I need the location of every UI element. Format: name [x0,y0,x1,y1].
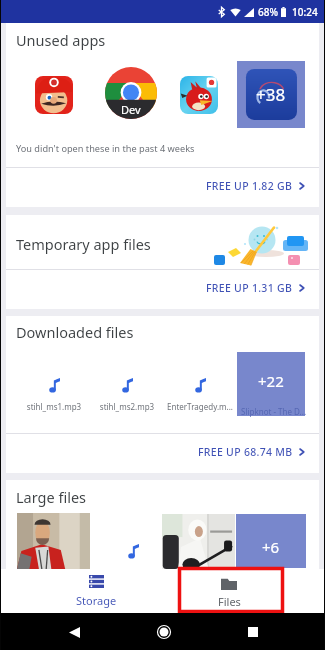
button[interactable]: Storage [46,569,146,613]
staticText: 68% [258,5,278,19]
button[interactable]: Back [62,620,86,644]
button[interactable]: Recents [241,620,265,644]
staticText: EnterTragedy.m... [164,401,236,412]
button[interactable]: FREE UP 68.74 MB [6,434,319,473]
staticText: 10:24 [292,5,318,19]
staticText: Slipknot - The D... [241,406,307,417]
staticText: Dev [121,102,141,117]
staticText: Large files [16,487,87,507]
staticText: +22 [258,371,284,391]
button[interactable]: FREE UP 1.82 GB [6,168,319,207]
staticText: FREE UP 1.31 GB [206,281,293,295]
staticText: Downloaded files [16,322,134,342]
button[interactable]: Home [152,620,176,644]
staticText: stihl_ms1.mp3 [18,401,90,412]
button[interactable]: FREE UP 1.31 GB [6,270,319,309]
button[interactable]: Files [179,569,279,613]
staticText: FREE UP 1.82 GB [206,179,293,193]
staticText: +38 [256,83,286,106]
staticText: +6 [262,537,280,557]
staticText: stihl_ms2.mp3 [91,401,163,412]
staticText: Unused apps [16,30,106,50]
staticText: Temporary app files [16,234,151,254]
staticText: Storage [76,593,117,608]
staticText: You didn't open these in the past 4 week… [16,142,195,155]
staticText: Files [218,594,241,609]
staticText: FREE UP 68.74 MB [198,445,293,459]
